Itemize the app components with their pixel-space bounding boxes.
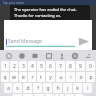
button[interactable]: 2 bbox=[10, 61, 18, 71]
button[interactable]: c bbox=[34, 94, 44, 96]
button[interactable]: r bbox=[28, 72, 36, 82]
staticText: a bbox=[7, 85, 10, 92]
button[interactable]: a bbox=[4, 83, 12, 93]
staticText: f bbox=[37, 85, 39, 92]
staticText: k bbox=[76, 85, 79, 92]
staticText: 2 bbox=[13, 63, 16, 70]
button[interactable]: More bbox=[83, 51, 92, 60]
staticText: o bbox=[79, 74, 83, 81]
staticText: s bbox=[16, 85, 19, 92]
button[interactable]: Send bbox=[77, 35, 91, 48]
button[interactable]: d bbox=[23, 83, 32, 93]
button[interactable]: Emoji bbox=[4, 51, 13, 60]
button[interactable]: Settings bbox=[70, 51, 79, 60]
button[interactable]: k bbox=[73, 83, 82, 93]
staticText: 4 bbox=[31, 63, 34, 70]
button[interactable]: GIF bbox=[17, 51, 26, 60]
button[interactable]: x bbox=[23, 94, 33, 96]
button[interactable]: i bbox=[66, 72, 75, 82]
staticText: t bbox=[40, 74, 42, 81]
button[interactable]: Voice input bbox=[57, 51, 66, 60]
button[interactable]: Send Message bbox=[6, 35, 75, 47]
staticText: 3 bbox=[22, 63, 25, 70]
staticText: e bbox=[22, 74, 25, 81]
staticText: b bbox=[58, 94, 62, 96]
staticText: u bbox=[59, 74, 63, 81]
staticText: 1 bbox=[4, 63, 7, 70]
button[interactable]: m bbox=[75, 94, 84, 96]
staticText: 6 bbox=[49, 63, 52, 70]
button[interactable]: 7 bbox=[56, 61, 65, 71]
button[interactable]: h bbox=[53, 83, 62, 93]
button[interactable]: n bbox=[65, 94, 74, 96]
staticText: 0 bbox=[89, 63, 92, 70]
staticText: The operator has ended the chat. bbox=[14, 7, 77, 12]
button[interactable]: 0 bbox=[86, 61, 95, 71]
staticText: p bbox=[89, 74, 93, 81]
button[interactable]: The operator has ended the chat. bbox=[10, 5, 90, 20]
button[interactable]: o bbox=[76, 72, 85, 82]
button[interactable]: j bbox=[63, 83, 72, 93]
staticText: i bbox=[70, 74, 72, 81]
button[interactable]: t bbox=[37, 72, 45, 82]
staticText: g bbox=[46, 85, 50, 92]
staticText: d bbox=[26, 85, 30, 92]
button[interactable]: 3 bbox=[19, 61, 27, 71]
staticText: r bbox=[31, 74, 34, 81]
staticText: h bbox=[56, 85, 60, 92]
staticText: 8 bbox=[69, 63, 72, 70]
staticText: Send Message bbox=[8, 38, 42, 45]
button[interactable]: u bbox=[56, 72, 65, 82]
button[interactable]: z bbox=[12, 94, 22, 96]
staticText: Tap your name bbox=[3, 1, 24, 5]
button[interactable]: b bbox=[55, 94, 64, 96]
button[interactable]: 4 bbox=[28, 61, 36, 71]
button[interactable]: f bbox=[33, 83, 42, 93]
button[interactable]: Stickers bbox=[30, 51, 39, 60]
button[interactable]: 5 bbox=[37, 61, 45, 71]
staticText: 9 bbox=[79, 63, 82, 70]
button[interactable]: w bbox=[10, 72, 18, 82]
button[interactable]: q bbox=[1, 72, 9, 82]
staticText: y bbox=[49, 74, 52, 81]
staticText: 7 bbox=[59, 63, 62, 70]
button[interactable]: v bbox=[45, 94, 54, 96]
button[interactable]: y bbox=[46, 72, 55, 82]
staticText: Thanks for contacting us. bbox=[14, 13, 62, 18]
staticText: j bbox=[67, 85, 69, 92]
button[interactable]: 6 bbox=[46, 61, 55, 71]
button[interactable]: 9 bbox=[76, 61, 85, 71]
button[interactable]: 8 bbox=[66, 61, 75, 71]
staticText: q bbox=[3, 74, 7, 81]
staticText: l bbox=[87, 85, 89, 92]
button[interactable]: p bbox=[86, 72, 95, 82]
button[interactable]: Clipboard bbox=[44, 51, 53, 60]
button[interactable]: s bbox=[13, 83, 22, 93]
button[interactable]: e bbox=[19, 72, 27, 82]
staticText: w bbox=[12, 74, 16, 81]
button[interactable]: l bbox=[83, 83, 92, 93]
staticText: 5 bbox=[40, 63, 43, 70]
button[interactable]: 1 bbox=[1, 61, 9, 71]
button[interactable]: g bbox=[43, 83, 52, 93]
